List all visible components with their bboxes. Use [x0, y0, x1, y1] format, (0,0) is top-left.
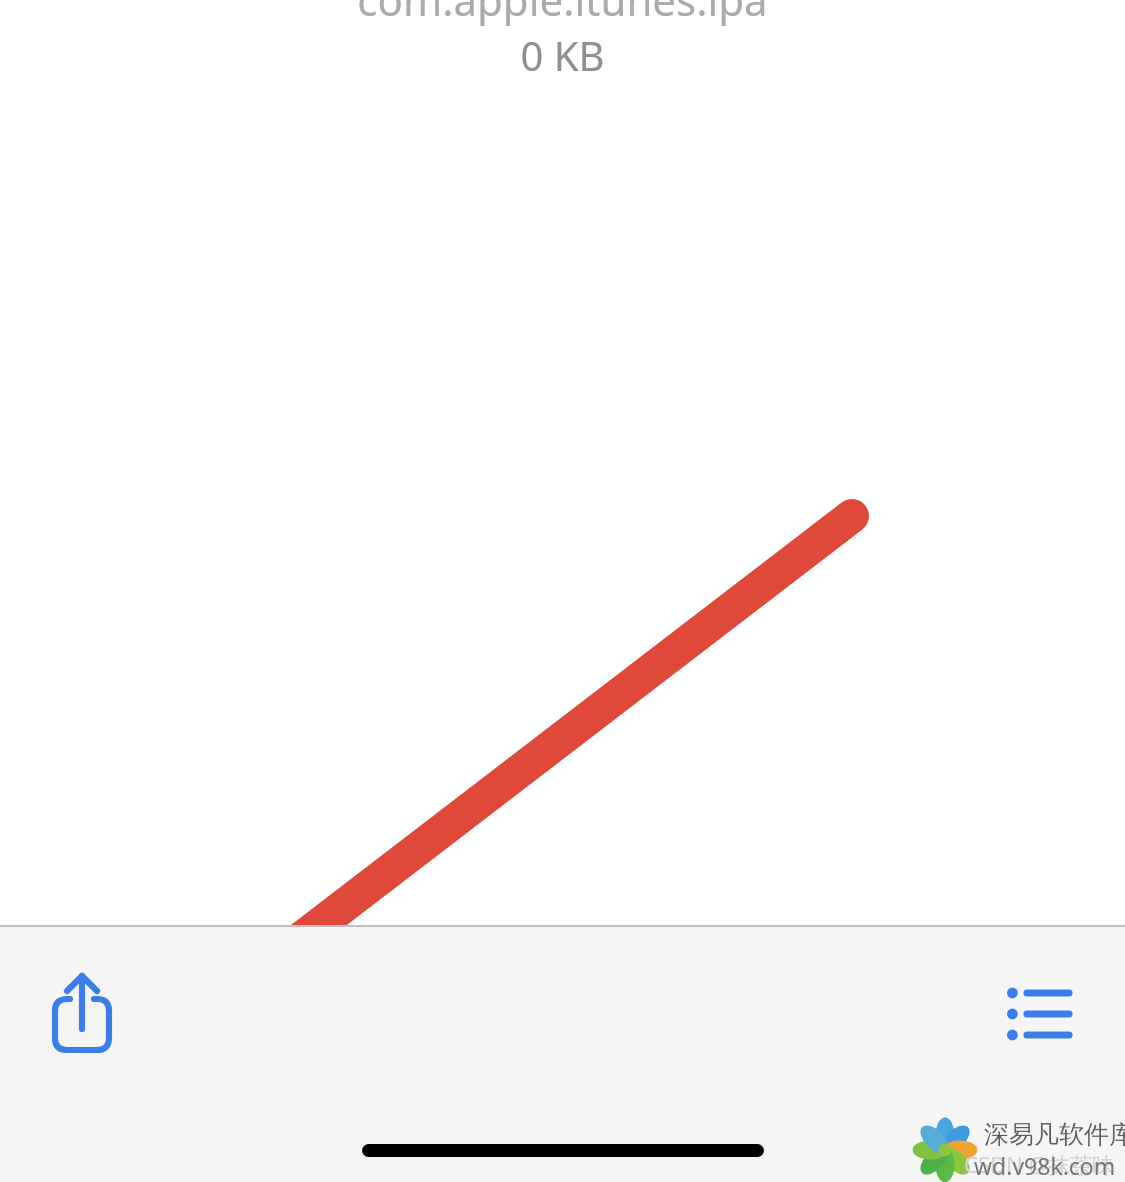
button[interactable]: Share	[30, 958, 134, 1066]
staticText: 深易凡软件库	[984, 1119, 1125, 1150]
staticText: com.apple.itunes.ipa	[357, 0, 768, 28]
button[interactable]: List	[986, 970, 1090, 1058]
staticText: wd.v98k.com	[974, 1150, 1116, 1181]
staticText: 0 KB	[520, 28, 605, 82]
staticText: CSDN @抹茶味	[964, 1149, 1115, 1179]
